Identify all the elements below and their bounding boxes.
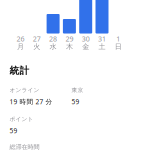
staticText: 59 xyxy=(71,97,79,106)
staticText: ポイント xyxy=(9,115,33,123)
staticText: 日 xyxy=(115,42,122,51)
staticText: 27 xyxy=(33,34,41,44)
staticText: 総滞在時間 xyxy=(9,143,39,150)
staticText: 19 時間 27 分 xyxy=(9,97,52,106)
staticText: 1 xyxy=(116,34,120,44)
staticText: 統計 xyxy=(9,64,29,77)
staticText: 土 xyxy=(98,42,105,51)
staticText: 火 xyxy=(33,42,40,51)
staticText: 東京 xyxy=(71,86,83,94)
staticText: 26 xyxy=(16,34,24,44)
staticText: オンライン xyxy=(9,86,39,94)
staticText: 月 xyxy=(17,42,24,51)
staticText: 30 xyxy=(82,34,90,44)
staticText: 金 xyxy=(82,42,89,51)
staticText: 水 xyxy=(50,42,57,51)
staticText: 29 xyxy=(65,34,73,44)
staticText: 59 xyxy=(9,126,17,135)
staticText: 31 xyxy=(98,34,106,44)
staticText: 木 xyxy=(66,42,73,51)
staticText: 28 xyxy=(49,34,57,44)
